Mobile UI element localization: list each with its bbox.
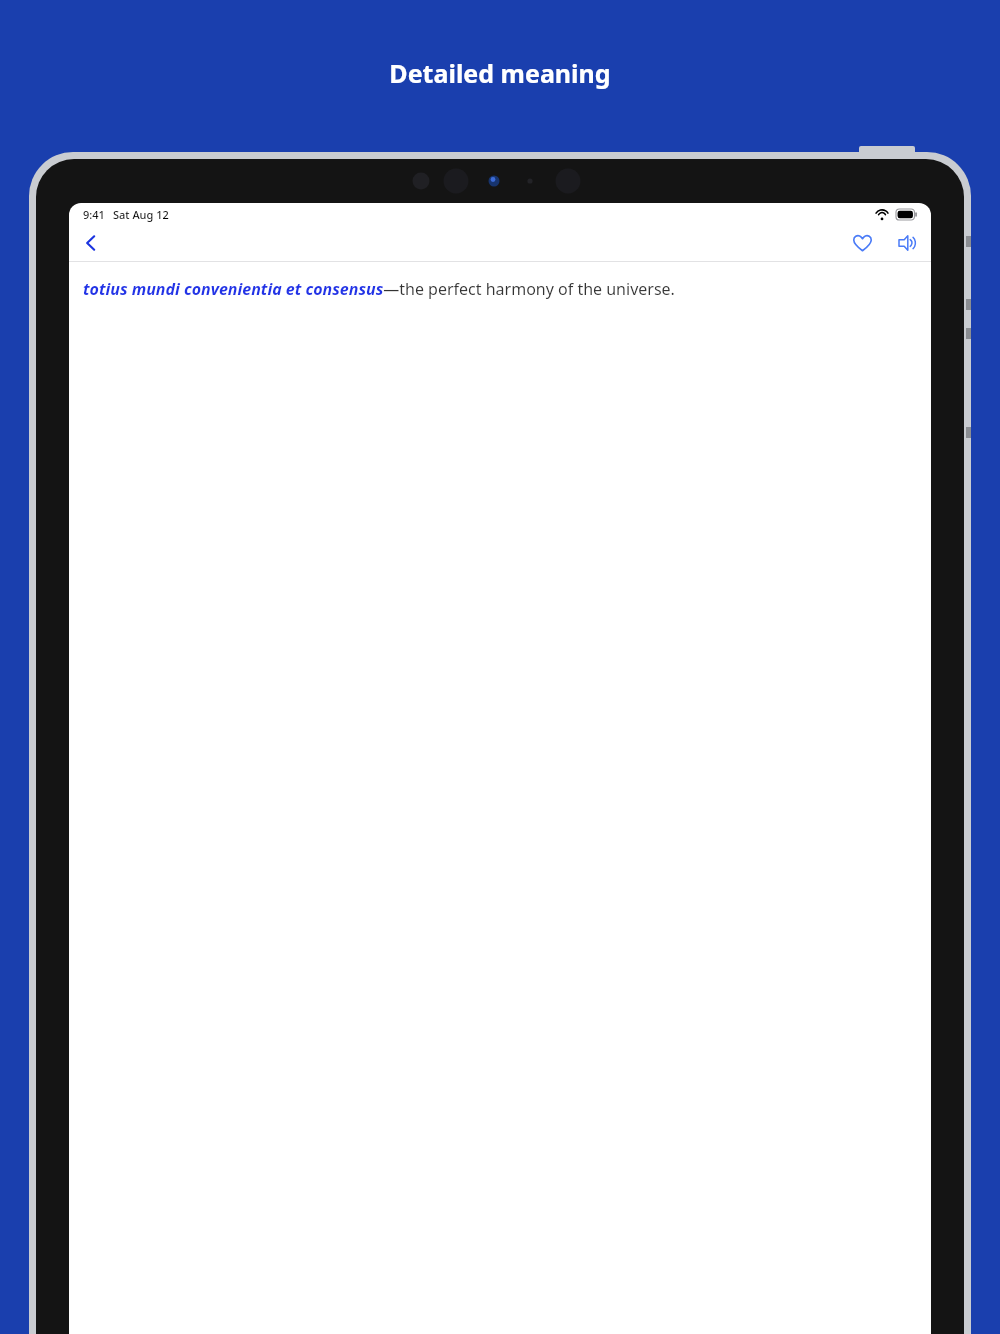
staticText: 9:41 bbox=[83, 207, 105, 222]
staticText: Sat Aug 12 bbox=[113, 207, 169, 222]
staticText: totius mundi convenientia et consensus—t… bbox=[83, 278, 675, 300]
button[interactable]: Favorite bbox=[844, 225, 880, 261]
staticText: Detailed meaning bbox=[389, 56, 611, 90]
button[interactable]: Back bbox=[73, 225, 109, 261]
button[interactable]: Pronounce bbox=[889, 225, 925, 261]
